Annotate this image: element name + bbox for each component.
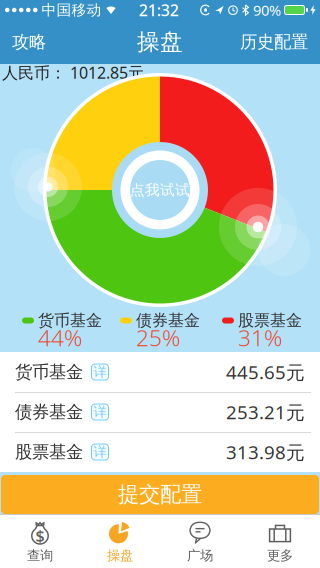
- staticText: 货币基金: [15, 361, 83, 383]
- button[interactable]: 操盘: [80, 515, 160, 567]
- staticText: 313.98元: [226, 440, 305, 464]
- staticText: 详: [93, 404, 106, 420]
- staticText: 445.65元: [226, 360, 305, 384]
- staticText: 股票基金: [15, 441, 83, 463]
- staticText: 21:32: [139, 0, 179, 21]
- staticText: 操盘: [107, 547, 133, 564]
- button[interactable]: 股票基金: [0, 432, 320, 472]
- staticText: 债券基金: [15, 401, 83, 423]
- staticText: 25%: [136, 322, 180, 352]
- staticText: 提交配置: [118, 481, 202, 508]
- button[interactable]: 历史配置: [240, 19, 320, 65]
- button[interactable]: 广场: [160, 515, 240, 567]
- staticText: 90%: [253, 0, 281, 20]
- staticText: 操盘: [137, 28, 183, 56]
- staticText: 31%: [238, 322, 282, 352]
- button[interactable]: 提交配置: [1, 475, 319, 514]
- staticText: 货币基金: [38, 311, 102, 330]
- button[interactable]: 攻略: [0, 19, 46, 65]
- staticText: 攻略: [12, 31, 46, 53]
- staticText: 人民币： 1012.85元: [2, 62, 144, 83]
- button[interactable]: 货币基金: [0, 352, 320, 392]
- staticText: 历史配置: [240, 31, 308, 53]
- staticText: 详: [93, 444, 106, 460]
- staticText: 股票基金: [238, 311, 302, 330]
- staticText: 中国移动: [41, 1, 101, 19]
- staticText: 253.21元: [226, 400, 305, 424]
- button[interactable]: 更多: [240, 515, 320, 567]
- staticText: 广场: [187, 547, 213, 564]
- staticText: 44%: [38, 322, 82, 352]
- staticText: 查询: [27, 547, 53, 564]
- staticText: 详: [93, 364, 106, 380]
- staticText: 点我试试: [130, 181, 190, 199]
- button[interactable]: 债券基金: [0, 392, 320, 432]
- staticText: 债券基金: [136, 311, 200, 330]
- staticText: 更多: [267, 547, 293, 564]
- staticText: $: [35, 525, 44, 546]
- button[interactable]: 点我试试: [112, 142, 208, 238]
- button[interactable]: $: [0, 515, 80, 567]
